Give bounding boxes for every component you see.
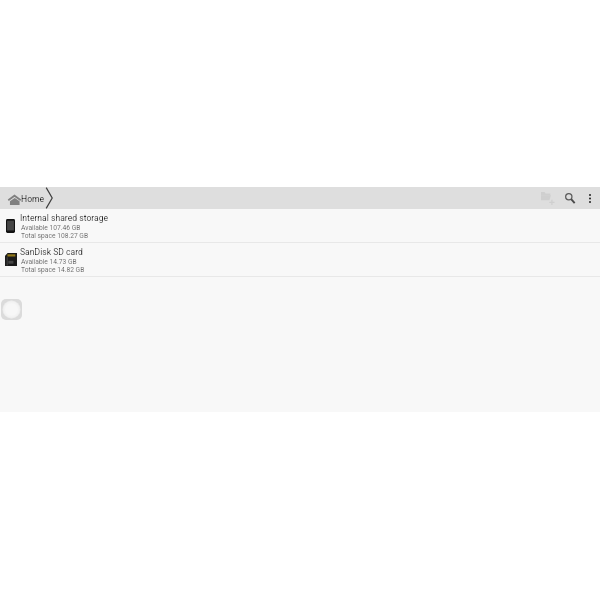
button[interactable]: Home [0,187,49,209]
button[interactable]: Search [559,187,582,209]
staticText: Total space 14.82 GB [21,266,85,274]
staticText: Available 14.73 GB [21,258,77,266]
staticText: SanDisk SD card [20,247,83,257]
staticText: Internal shared storage [20,213,109,223]
staticText: Home [21,194,45,204]
button[interactable]: More options [580,187,600,209]
staticText: Available 107.46 GB [21,224,81,232]
button[interactable]: New folder [536,187,559,209]
button[interactable]: Internal shared storage [0,209,600,243]
button[interactable]: SanDisk SD card [0,243,600,277]
button[interactable]: Add [1,299,22,320]
staticText: Total space 108.27 GB [21,232,89,240]
